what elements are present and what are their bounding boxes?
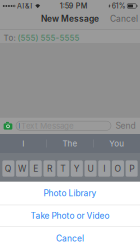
staticText: E	[33, 163, 38, 174]
button[interactable]: Take Photo or Video	[0, 205, 140, 226]
staticText: AT&T	[17, 2, 33, 10]
button[interactable]: Y	[71, 160, 83, 177]
staticText: To:	[3, 33, 15, 43]
button[interactable]: I	[98, 160, 110, 177]
staticText: Take Photo or Video	[30, 211, 109, 221]
button[interactable]: E	[30, 160, 42, 177]
staticText: Photo Library	[43, 188, 96, 198]
staticText: P	[129, 163, 134, 174]
staticText: R	[47, 163, 52, 174]
staticText: I	[22, 139, 24, 148]
staticText: Q	[5, 163, 12, 174]
staticText: Cancel	[56, 233, 84, 244]
button[interactable]: Cancel	[108, 12, 140, 29]
button[interactable]: Photo Library	[0, 182, 140, 205]
staticText: You	[109, 139, 124, 148]
staticText: Send	[115, 121, 135, 131]
staticText: Text Message	[21, 121, 74, 131]
staticText: 61%	[112, 2, 126, 10]
button[interactable]: R	[43, 160, 55, 177]
button[interactable]: You	[94, 134, 140, 153]
staticText: (555) 555-5555	[17, 33, 79, 43]
button[interactable]: O	[112, 160, 124, 177]
button[interactable]: P	[126, 160, 138, 177]
button[interactable]: U	[84, 160, 96, 177]
button[interactable]: Cancel	[0, 227, 140, 250]
staticText: W	[18, 163, 26, 174]
button[interactable]: W	[16, 160, 28, 177]
staticText: The	[62, 139, 77, 148]
staticText: Y	[74, 163, 80, 174]
button[interactable]: The	[47, 134, 93, 153]
button[interactable]: T	[57, 160, 69, 177]
staticText: I	[103, 163, 105, 174]
staticText: T	[60, 163, 66, 174]
staticText: 1:59 PM	[60, 2, 88, 10]
button[interactable]: Send	[111, 117, 140, 134]
staticText: New Message	[41, 14, 99, 24]
button[interactable]: Camera	[0, 117, 16, 134]
button[interactable]: Q	[2, 160, 14, 177]
staticText: Cancel	[110, 14, 138, 24]
staticText: U	[87, 163, 93, 174]
staticText: O	[114, 163, 121, 174]
button[interactable]: I	[0, 134, 46, 153]
